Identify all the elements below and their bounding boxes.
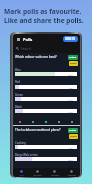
button[interactable]: Polls (13, 168, 29, 177)
staticText: Binge Web series (15, 153, 38, 157)
staticText: Blue (15, 68, 21, 72)
staticText: 30% (68, 158, 73, 161)
staticText: Public (70, 135, 77, 138)
staticText: Green (15, 93, 24, 97)
staticText: 12% (68, 98, 73, 101)
button[interactable]: Public (69, 61, 78, 66)
staticText: Black (15, 105, 22, 109)
staticText: Cooking (15, 141, 26, 145)
staticText: 15% (68, 110, 73, 113)
button[interactable]: Comment (30, 119, 35, 124)
button[interactable]: Active (68, 128, 78, 133)
staticText: Polls (23, 37, 33, 42)
button[interactable]: Like (17, 119, 22, 124)
staticText: Active (69, 129, 77, 132)
staticText: Which colour suits me best? (15, 55, 68, 59)
staticText: Active (69, 56, 77, 59)
button[interactable]: Settings (63, 168, 80, 177)
button[interactable]: My Polls (29, 168, 46, 177)
staticText: Public (70, 62, 77, 65)
button[interactable]: Share (43, 119, 48, 124)
staticText: Account (51, 174, 59, 177)
staticText: 8% (69, 86, 73, 89)
staticText: 65% (68, 73, 73, 76)
button[interactable]: SIGN IN (63, 36, 78, 42)
staticText: Mark polls as favourite. (4, 7, 82, 16)
staticText: Red (15, 80, 21, 84)
button[interactable]: Menu (15, 36, 21, 42)
staticText: SIGN IN (65, 37, 76, 41)
staticText: Polls (19, 174, 24, 177)
button[interactable]: Bookmark (56, 119, 61, 124)
staticText: My Polls (33, 174, 42, 177)
staticText: The lockdown weekend plans? (15, 128, 68, 132)
staticText: Settings (68, 174, 76, 177)
button[interactable]: Public (69, 134, 78, 139)
staticText: Like and share the polls. (4, 16, 84, 25)
staticText: 5% (69, 146, 73, 149)
button[interactable]: Account (46, 168, 63, 177)
button[interactable]: Active (68, 55, 78, 60)
staticText: Search (21, 47, 31, 51)
button[interactable]: More (69, 119, 74, 124)
